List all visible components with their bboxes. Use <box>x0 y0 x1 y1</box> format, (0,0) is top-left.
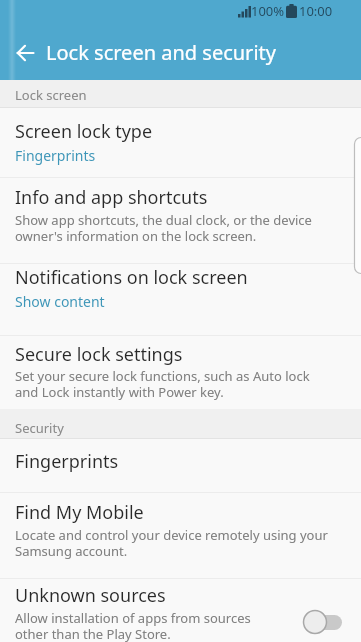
button[interactable]: Notifications on lock screen <box>0 264 361 335</box>
button[interactable]: Find My Mobile <box>0 493 361 578</box>
button[interactable]: Fingerprints <box>0 439 361 492</box>
staticText: Show app shortcuts, the dual clock, or t… <box>15 211 312 244</box>
staticText: Show content <box>15 292 105 311</box>
staticText: Find My Mobile <box>15 500 144 525</box>
button[interactable]: Secure lock settings <box>0 336 361 409</box>
staticText: Security <box>15 419 64 437</box>
staticText: Screen lock type <box>15 119 153 144</box>
staticText: 100% <box>251 2 285 20</box>
staticText: Notifications on lock screen <box>15 265 248 290</box>
staticText: Locate and control your device remotely … <box>15 526 328 559</box>
button[interactable]: Info and app shortcuts <box>0 178 361 263</box>
staticText: Lock screen and security <box>46 39 276 66</box>
button[interactable] <box>296 603 348 635</box>
staticText: 10:00 <box>299 2 333 20</box>
staticText: Fingerprints <box>15 449 119 474</box>
staticText: Info and app shortcuts <box>15 185 208 210</box>
staticText: Unknown sources <box>15 583 166 608</box>
staticText: Set your secure lock functions, such as … <box>15 367 310 400</box>
button[interactable]: Unknown sources <box>0 579 361 642</box>
staticText: Allow installation of apps from sources … <box>15 609 251 642</box>
button[interactable]: Screen lock type <box>0 108 361 177</box>
staticText: Lock screen <box>15 86 87 104</box>
staticText: Secure lock settings <box>15 342 183 367</box>
staticText: Fingerprints <box>15 146 96 165</box>
button[interactable] <box>4 38 48 68</box>
